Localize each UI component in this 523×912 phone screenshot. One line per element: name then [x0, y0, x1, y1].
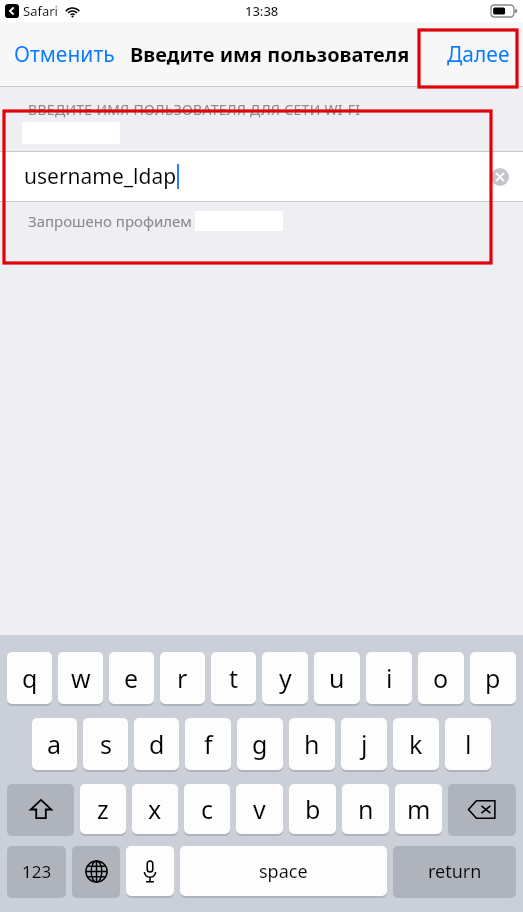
button[interactable]: k — [393, 718, 439, 770]
staticText: ВВЕДИТЕ ИМЯ ПОЛЬЗОВАТЕЛЯ ДЛЯ СЕТИ WI-FI — [28, 100, 361, 119]
staticText: g — [252, 727, 268, 761]
button[interactable]: p — [470, 652, 516, 704]
staticText: Введите имя пользователя — [130, 41, 410, 68]
button[interactable]: space — [180, 846, 387, 896]
staticText: return — [428, 859, 482, 884]
staticText: b — [305, 792, 321, 826]
button[interactable]: 123 — [7, 846, 66, 896]
button[interactable]: Далее — [434, 31, 523, 78]
staticText: 13:38 — [245, 2, 279, 20]
button[interactable]: e — [109, 652, 154, 704]
staticText: v — [253, 792, 266, 826]
staticText: x — [148, 792, 162, 826]
staticText: a — [47, 727, 62, 761]
button[interactable]: Backspace — [448, 784, 516, 834]
staticText: n — [358, 792, 374, 826]
button[interactable]: v — [236, 784, 283, 834]
button[interactable]: u — [314, 652, 360, 704]
button[interactable]: g — [237, 718, 283, 770]
button[interactable]: q — [7, 652, 52, 704]
staticText: y — [279, 661, 292, 695]
button[interactable]: j — [341, 718, 387, 770]
staticText: q — [22, 661, 38, 695]
button[interactable]: l — [445, 718, 491, 770]
staticText: h — [304, 727, 320, 761]
button[interactable]: Отменить — [0, 31, 129, 78]
staticText: l — [465, 727, 472, 761]
staticText: k — [409, 727, 423, 761]
staticText: o — [433, 661, 449, 695]
button[interactable]: Change keyboard — [72, 846, 120, 896]
button[interactable]: y — [262, 652, 308, 704]
button[interactable]: f — [185, 718, 231, 770]
staticText: c — [201, 792, 214, 826]
button[interactable]: username_ldap — [0, 152, 523, 201]
staticText: p — [485, 661, 501, 695]
staticText: 123 — [22, 860, 52, 883]
staticText: e — [124, 661, 139, 695]
button[interactable]: Dictate — [126, 846, 174, 896]
button[interactable]: i — [366, 652, 412, 704]
button[interactable]: r — [160, 652, 205, 704]
button[interactable]: z — [80, 784, 126, 834]
button[interactable]: t — [211, 652, 256, 704]
staticText: r — [177, 661, 188, 695]
button[interactable]: n — [342, 784, 389, 834]
button[interactable]: Clear text — [491, 168, 509, 186]
staticText: Safari — [23, 2, 58, 20]
staticText: username_ldap — [24, 162, 177, 191]
button[interactable]: m — [395, 784, 442, 834]
staticText: s — [100, 727, 112, 761]
staticText: u — [329, 661, 345, 695]
staticText: m — [407, 792, 431, 826]
staticText: j — [361, 727, 368, 761]
button[interactable]: b — [289, 784, 336, 834]
staticText: space — [259, 859, 308, 884]
button[interactable]: x — [132, 784, 178, 834]
button[interactable]: s — [83, 718, 128, 770]
staticText: f — [204, 727, 213, 761]
button[interactable]: return — [393, 846, 516, 896]
button[interactable]: o — [418, 652, 464, 704]
staticText: t — [229, 661, 239, 695]
staticText: Отменить — [14, 40, 115, 69]
staticText: i — [386, 661, 393, 695]
staticText: z — [97, 792, 109, 826]
button[interactable]: w — [58, 652, 103, 704]
button[interactable]: Shift — [7, 784, 74, 834]
button[interactable]: h — [289, 718, 335, 770]
staticText: w — [71, 661, 91, 695]
button[interactable]: c — [184, 784, 230, 834]
staticText: Далее — [447, 40, 510, 69]
staticText: d — [149, 727, 165, 761]
staticText: Запрошено профилем — [28, 211, 192, 231]
button[interactable]: d — [134, 718, 179, 770]
button[interactable]: a — [32, 718, 77, 770]
